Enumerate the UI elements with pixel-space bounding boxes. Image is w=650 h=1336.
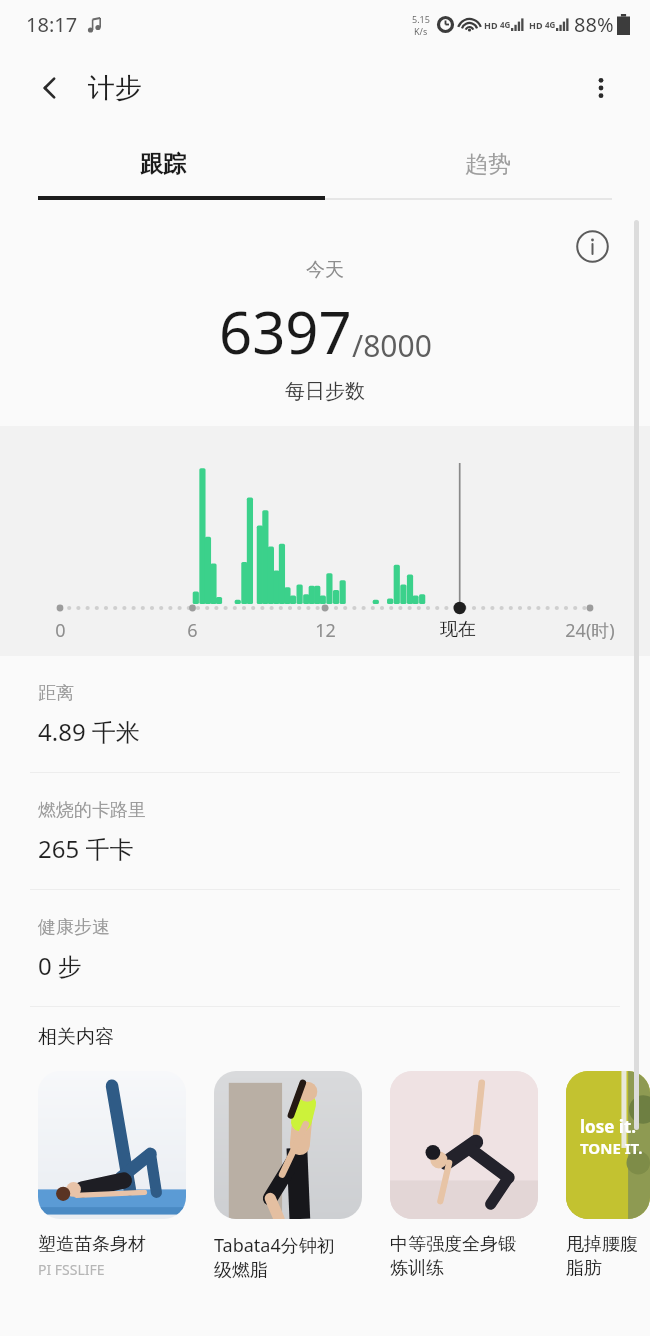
button[interactable]: 距离	[0, 656, 650, 773]
staticText: 4G	[500, 19, 511, 30]
staticText: PI FSSLIFE	[38, 1260, 105, 1279]
button[interactable]: 塑造苗条身材	[38, 1071, 186, 1279]
staticText: HD	[484, 19, 498, 31]
button[interactable]: lose it.	[566, 1071, 650, 1279]
staticText: 4G	[545, 19, 556, 30]
staticText: 88%	[574, 11, 614, 38]
staticText: 趋势	[465, 150, 511, 179]
staticText: 12	[315, 618, 336, 643]
staticText: TONE IT.	[580, 1138, 643, 1158]
button[interactable]: 燃烧的卡路里	[0, 773, 650, 890]
staticText: 中等强度全身锻 炼训练	[390, 1233, 516, 1279]
staticText: 5.15	[412, 13, 430, 25]
staticText: 跟踪	[140, 150, 186, 179]
button[interactable]: 中等强度全身锻 炼训练	[390, 1071, 538, 1279]
staticText: 6	[187, 618, 198, 643]
staticText: 塑造苗条身材	[38, 1233, 146, 1256]
staticText: 距离	[38, 682, 74, 705]
button[interactable]: Information	[572, 226, 612, 266]
staticText: 18:17	[26, 11, 78, 38]
staticText: 每日步数	[285, 379, 365, 404]
staticText: 4.89 千米	[38, 715, 140, 748]
staticText: 燃烧的卡路里	[38, 799, 146, 822]
staticText: 6397	[219, 292, 352, 371]
staticText: K/s	[414, 25, 428, 37]
button[interactable]: 趋势	[325, 128, 650, 200]
button[interactable]: 跟踪	[0, 128, 325, 200]
staticText: HD	[529, 19, 543, 31]
staticText: /8000	[352, 325, 432, 366]
staticText: 甩掉腰腹 脂肪	[566, 1233, 638, 1279]
staticText: lose it.	[580, 1115, 637, 1138]
staticText: 今天	[306, 258, 344, 282]
button[interactable]: Back	[24, 62, 76, 114]
button[interactable]: More options	[576, 63, 626, 113]
staticText: 0 步	[38, 949, 82, 982]
button[interactable]: 健康步速	[0, 890, 650, 1007]
staticText: 现在	[440, 618, 476, 641]
button[interactable]: Tabata4分钟初 级燃脂	[214, 1071, 362, 1281]
staticText: 健康步速	[38, 916, 110, 939]
staticText: Tabata4分钟初 级燃脂	[214, 1233, 335, 1281]
staticText: 265 千卡	[38, 832, 134, 865]
staticText: 24(时)	[565, 618, 615, 643]
staticText: 0	[55, 618, 66, 643]
staticText: 相关内容	[38, 1025, 114, 1049]
staticText: 计步	[88, 71, 142, 105]
